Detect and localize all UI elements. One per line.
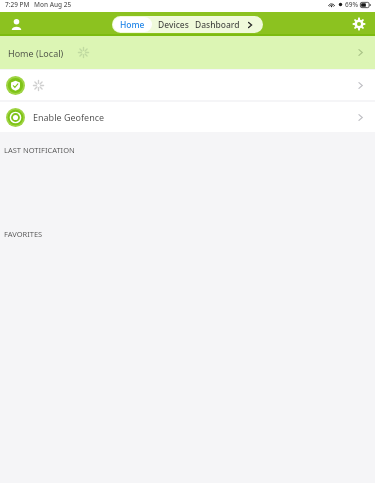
staticText: LAST NOTIFICATION [4, 145, 75, 155]
staticText: Mon Aug 25 [34, 0, 72, 9]
staticText: 7:29 PM [5, 0, 30, 9]
button[interactable]: More tabs [245, 20, 255, 30]
button[interactable]: Settings [350, 15, 368, 33]
staticText: 69% [345, 0, 358, 9]
button[interactable]: Enable Geofence [0, 102, 375, 132]
staticText: Home [120, 19, 145, 30]
button[interactable]: Account [7, 15, 25, 33]
staticText: Dashboard [195, 19, 240, 31]
button[interactable]: Home [120, 19, 145, 30]
button[interactable] [0, 70, 375, 100]
staticText: FAVORITES [4, 229, 43, 239]
button[interactable]: Home (Local) [0, 36, 375, 69]
staticText: Devices [158, 19, 189, 31]
staticText: Home (Local) [8, 47, 64, 59]
button[interactable]: Dashboard [195, 19, 240, 31]
staticText: Enable Geofence [33, 111, 105, 123]
button[interactable]: Devices [158, 19, 189, 31]
